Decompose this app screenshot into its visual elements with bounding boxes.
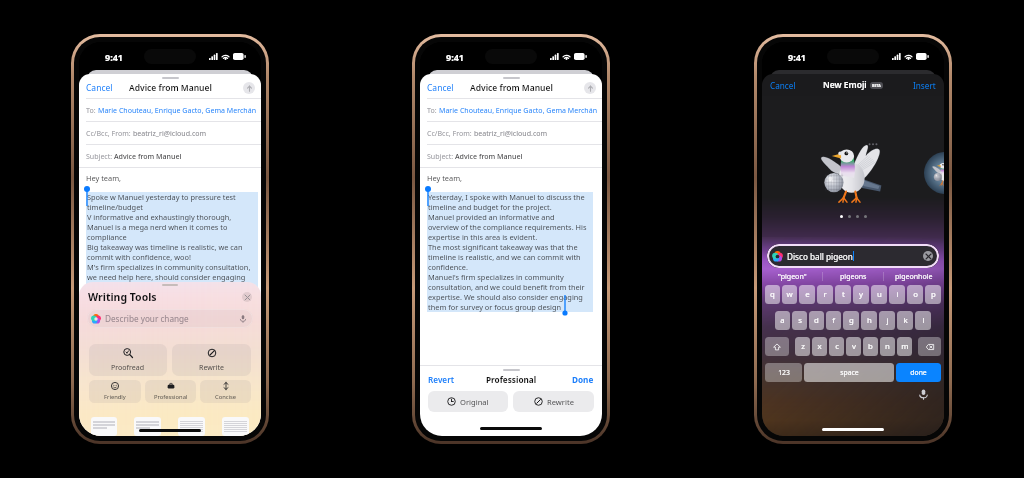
button[interactable]: b <box>863 337 878 356</box>
button[interactable]: g <box>843 311 859 330</box>
staticText: Hey team, <box>427 173 463 183</box>
staticText: p <box>931 289 936 300</box>
button[interactable]: q <box>765 285 780 304</box>
staticText: beatriz_ri@icloud.com <box>474 128 548 138</box>
button[interactable]: i <box>889 285 905 304</box>
staticText: Professional <box>154 393 188 401</box>
button[interactable]: Done <box>572 374 594 385</box>
button[interactable]: Rewrite <box>513 391 594 412</box>
staticText: expertise. We should also consider engag… <box>428 292 583 302</box>
button[interactable]: Proofread <box>89 344 167 376</box>
button[interactable]: f <box>826 311 841 330</box>
staticText: m <box>901 341 909 352</box>
staticText: o <box>913 289 918 300</box>
staticText: h <box>867 315 872 326</box>
button[interactable]: Insert <box>913 80 936 91</box>
button[interactable]: a <box>775 311 790 330</box>
staticText: timeline and budget for the project. <box>428 202 552 212</box>
button[interactable]: Cancel <box>86 82 113 94</box>
staticText: timeline is realistic, and we can commit… <box>428 252 581 262</box>
button[interactable]: Clear <box>923 251 933 261</box>
button[interactable]: Close <box>242 292 252 302</box>
staticText: overview of the compliance requirements.… <box>428 222 587 232</box>
staticText: Concise <box>215 393 237 401</box>
staticText: v <box>852 341 856 352</box>
staticText: Disco ball pigeon <box>787 251 853 262</box>
button[interactable]: Dictate <box>916 387 930 401</box>
button[interactable]: "pigeon" <box>762 269 822 283</box>
button[interactable]: Send <box>584 82 596 94</box>
button[interactable]: Send <box>243 82 255 94</box>
button[interactable]: l <box>915 311 931 330</box>
staticText: x <box>817 341 822 352</box>
staticText: confidence. <box>428 262 469 272</box>
staticText: l <box>922 315 925 326</box>
button[interactable]: c <box>829 337 844 356</box>
button[interactable]: Original <box>428 391 508 412</box>
button[interactable]: o <box>907 285 923 304</box>
staticText: them for survey or focus group design <box>428 302 562 312</box>
staticText: M's firm specializes in community consul… <box>87 262 251 272</box>
button[interactable]: j <box>879 311 895 330</box>
button[interactable]: t <box>835 285 851 304</box>
button[interactable]: Describe your change <box>87 309 253 328</box>
staticText: q <box>770 289 775 300</box>
button[interactable]: h <box>861 311 877 330</box>
button[interactable]: z <box>795 337 810 356</box>
staticText: Subject: <box>86 151 114 161</box>
button[interactable]: d <box>809 311 824 330</box>
button[interactable]: Revert <box>428 374 455 385</box>
button[interactable]: Backspace <box>918 337 941 356</box>
button[interactable]: Shift <box>765 337 789 356</box>
staticText: a <box>780 315 785 326</box>
button[interactable]: done <box>896 363 941 382</box>
staticText: consultation, and we could benefit from … <box>428 282 585 292</box>
staticText: c <box>835 341 839 352</box>
button[interactable]: n <box>880 337 895 356</box>
button[interactable]: p <box>925 285 941 304</box>
staticText: commit with confidence, woo! <box>87 252 191 262</box>
staticText: Proofread <box>111 362 145 372</box>
staticText: Marie Chouteau, Enrique Gacto, Gema Merc… <box>98 105 257 115</box>
button[interactable]: 123 <box>765 363 802 382</box>
staticText: d <box>814 315 819 326</box>
staticText: b <box>868 341 873 352</box>
button[interactable]: Friendly <box>89 380 141 403</box>
button[interactable]: pigeonhole <box>884 269 944 283</box>
button[interactable]: k <box>897 311 913 330</box>
button[interactable]: y <box>853 285 869 304</box>
button[interactable]: space <box>804 363 894 382</box>
button[interactable]: Rewrite <box>172 344 251 376</box>
button[interactable]: r <box>817 285 833 304</box>
button[interactable]: s <box>792 311 807 330</box>
staticText: beatriz_ri@icloud.com <box>133 128 207 138</box>
button[interactable]: Cancel <box>770 80 796 91</box>
staticText: To: <box>427 105 439 115</box>
staticText: Spoke w Manuel yesterday to pressure tes… <box>87 192 236 202</box>
button[interactable]: Disco ball pigeon <box>767 244 939 268</box>
staticText: Writing Tools <box>88 290 157 304</box>
staticText: z <box>801 341 805 352</box>
staticText: k <box>903 315 908 326</box>
staticText: y <box>859 289 863 300</box>
staticText: 9:41 <box>788 51 806 63</box>
staticText: "pigeon" <box>778 271 807 281</box>
button[interactable]: v <box>846 337 861 356</box>
button[interactable]: Concise <box>200 380 251 403</box>
staticText: 9:41 <box>105 51 123 63</box>
staticText: Rewrite <box>199 362 225 372</box>
staticText: s <box>798 315 802 326</box>
staticText: Cc/Bcc, From: <box>427 128 474 138</box>
staticText: To: <box>86 105 98 115</box>
staticText: e <box>805 289 810 300</box>
staticText: Yesterday, I spoke with Manuel to discus… <box>428 192 585 202</box>
button[interactable]: x <box>812 337 827 356</box>
button[interactable]: pigeons <box>823 269 883 283</box>
button[interactable]: Cancel <box>427 82 454 94</box>
button[interactable]: m <box>897 337 912 356</box>
button[interactable]: u <box>871 285 887 304</box>
button[interactable]: e <box>799 285 815 304</box>
button[interactable]: w <box>782 285 797 304</box>
button[interactable]: Professional <box>145 380 196 403</box>
staticText: Subject: <box>427 151 455 161</box>
